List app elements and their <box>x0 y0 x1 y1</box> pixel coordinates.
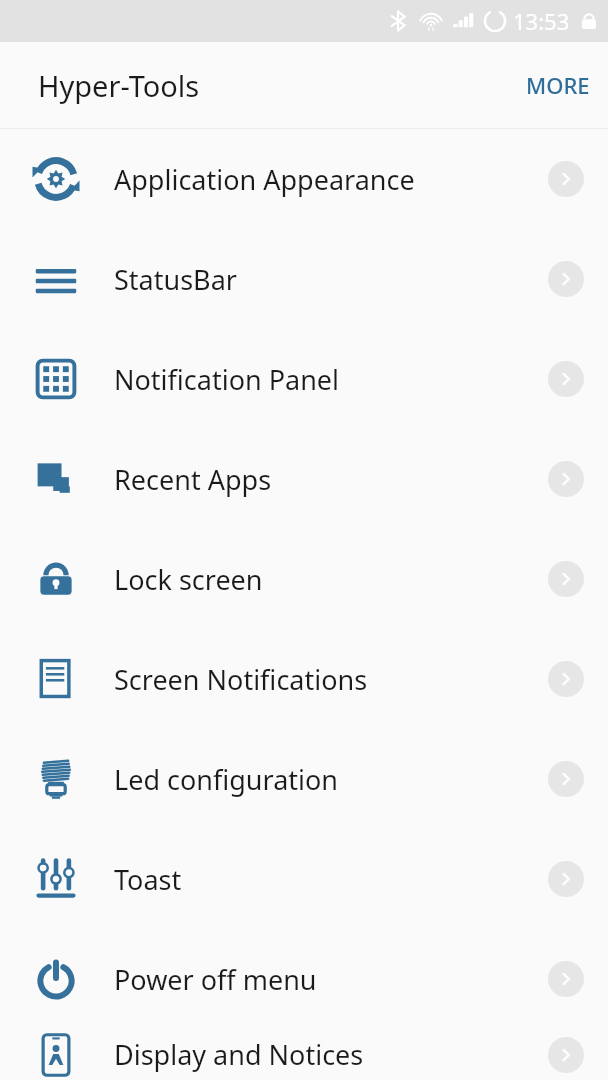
button[interactable]: Power off menu <box>0 929 608 1029</box>
staticText: Display and Notices <box>114 1036 364 1073</box>
staticText: 13:53 <box>513 6 570 36</box>
staticText: Screen Notifications <box>114 661 368 698</box>
staticText: Recent Apps <box>114 461 272 498</box>
staticText: Hyper-Tools <box>38 66 200 105</box>
button[interactable]: Application Appearance <box>0 129 608 229</box>
button[interactable]: Lock screen <box>0 529 608 629</box>
button[interactable]: Notification Panel <box>0 329 608 429</box>
staticText: Application Appearance <box>114 161 415 198</box>
button[interactable]: Toast <box>0 829 608 929</box>
button[interactable]: Led configuration <box>0 729 608 829</box>
button[interactable]: MORE <box>508 56 608 114</box>
staticText: Led configuration <box>114 761 339 798</box>
button[interactable]: Hyper-Tools <box>38 66 200 105</box>
staticText: Power off menu <box>114 961 317 998</box>
button[interactable]: StatusBar <box>0 229 608 329</box>
staticText: Notification Panel <box>114 361 340 398</box>
staticText: Toast <box>114 861 182 898</box>
staticText: MORE <box>526 70 590 100</box>
button[interactable]: Screen Notifications <box>0 629 608 729</box>
button[interactable]: Display and Notices <box>0 1029 608 1080</box>
button[interactable]: Recent Apps <box>0 429 608 529</box>
staticText: StatusBar <box>114 261 237 298</box>
staticText: Lock screen <box>114 561 263 598</box>
